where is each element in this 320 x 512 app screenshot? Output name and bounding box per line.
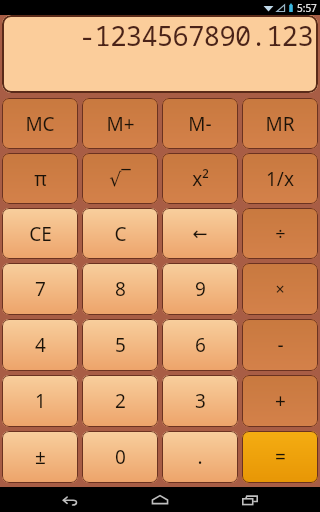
- button[interactable]: Divide: [242, 208, 318, 259]
- staticText: ×: [275, 278, 285, 300]
- staticText: C: [114, 221, 127, 247]
- staticText: 5: [115, 332, 126, 358]
- staticText: √‾: [109, 166, 131, 192]
- staticText: 6: [195, 332, 206, 358]
- button[interactable]: 5: [82, 319, 158, 371]
- button[interactable]: 3: [162, 375, 238, 427]
- button[interactable]: x²: [162, 153, 238, 204]
- button[interactable]: Home: [140, 487, 180, 512]
- button[interactable]: Backspace: [162, 208, 238, 259]
- button[interactable]: .: [162, 431, 238, 483]
- button[interactable]: 0: [82, 431, 158, 483]
- button[interactable]: 1/x: [242, 153, 318, 204]
- staticText: ÷: [275, 221, 286, 246]
- button[interactable]: MC: [2, 98, 78, 149]
- button[interactable]: Back: [50, 487, 90, 512]
- staticText: 9: [195, 276, 206, 302]
- staticText: .: [197, 444, 203, 470]
- staticText: π: [34, 166, 47, 192]
- button[interactable]: 6: [162, 319, 238, 371]
- button[interactable]: Plus minus: [2, 431, 78, 483]
- staticText: x²: [192, 166, 209, 192]
- button[interactable]: 8: [82, 263, 158, 315]
- button[interactable]: Plus: [242, 375, 318, 427]
- button[interactable]: C: [82, 208, 158, 259]
- staticText: =: [275, 444, 286, 470]
- staticText: 1: [35, 388, 46, 414]
- button[interactable]: √‾: [82, 153, 158, 204]
- button[interactable]: 7: [2, 263, 78, 315]
- staticText: -1234567890.123: [79, 17, 313, 54]
- staticText: ←: [192, 223, 208, 244]
- button[interactable]: MR: [242, 98, 318, 149]
- button[interactable]: M-: [162, 98, 238, 149]
- staticText: 7: [35, 276, 46, 302]
- staticText: MR: [265, 111, 295, 137]
- staticText: 4: [35, 332, 46, 358]
- button[interactable]: 4: [2, 319, 78, 371]
- staticText: ±: [35, 444, 46, 470]
- staticText: M+: [106, 111, 135, 137]
- button[interactable]: Minus: [242, 319, 318, 371]
- button[interactable]: 9: [162, 263, 238, 315]
- staticText: M-: [188, 111, 212, 137]
- button[interactable]: Multiply: [242, 263, 318, 315]
- button[interactable]: 2: [82, 375, 158, 427]
- staticText: MC: [25, 111, 55, 137]
- button[interactable]: Equals: [242, 431, 318, 483]
- staticText: 8: [115, 276, 126, 302]
- staticText: 5:57: [297, 1, 317, 15]
- button[interactable]: Recent apps: [230, 487, 270, 512]
- button[interactable]: π: [2, 153, 78, 204]
- staticText: +: [275, 388, 286, 414]
- button[interactable]: 1: [2, 375, 78, 427]
- staticText: -: [277, 332, 284, 358]
- staticText: 1/x: [266, 166, 294, 192]
- button[interactable]: M+: [82, 98, 158, 149]
- staticText: 0: [115, 444, 126, 470]
- staticText: CE: [29, 221, 52, 247]
- button[interactable]: CE: [2, 208, 78, 259]
- staticText: 3: [195, 388, 206, 414]
- staticText: 2: [115, 388, 126, 414]
